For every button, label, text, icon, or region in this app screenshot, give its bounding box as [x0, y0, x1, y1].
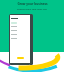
button[interactable]: Get started [17, 57, 24, 59]
staticText: Simple tools that help you [17, 7, 47, 10]
staticText: Grow your business [17, 2, 48, 6]
